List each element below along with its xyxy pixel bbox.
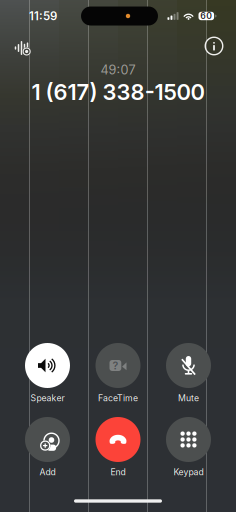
button[interactable]: End xyxy=(85,417,151,477)
button[interactable]: Keypad xyxy=(155,417,221,477)
button[interactable]: Call Details xyxy=(198,31,230,61)
button[interactable]: Add xyxy=(14,417,80,477)
staticText: ? xyxy=(112,359,118,372)
button[interactable]: Voice Isolation xyxy=(4,33,38,63)
staticText: Keypad xyxy=(173,467,203,477)
button[interactable]: Mute xyxy=(155,343,221,403)
staticText: Add xyxy=(39,467,55,477)
button[interactable]: Speaker xyxy=(14,343,80,403)
staticText: End xyxy=(110,467,125,477)
button[interactable]: ? xyxy=(85,343,151,403)
staticText: FaceTime xyxy=(98,393,138,403)
staticText: 11:59 xyxy=(29,9,57,23)
staticText: 1 (617) 338-1500 xyxy=(31,79,204,105)
staticText: 60 xyxy=(200,11,212,21)
staticText: 49:07 xyxy=(100,62,135,78)
staticText: Mute xyxy=(178,393,199,403)
staticText: Speaker xyxy=(30,393,64,403)
